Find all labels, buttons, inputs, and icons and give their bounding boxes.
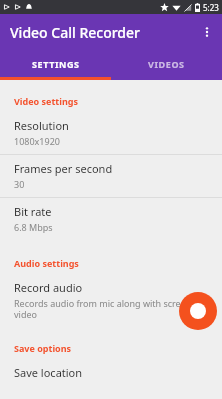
- staticText: Audio settings: [14, 257, 79, 269]
- button[interactable]: Start recording: [179, 292, 217, 330]
- staticText: Record audio: [14, 280, 83, 295]
- button[interactable]: SETTINGS: [0, 50, 111, 77]
- staticText: Resolution: [14, 118, 69, 133]
- button[interactable]: VIDEOS: [111, 50, 222, 77]
- staticText: 30: [14, 178, 25, 190]
- button[interactable]: Resolution: [0, 112, 222, 154]
- staticText: Save location: [14, 365, 83, 380]
- button[interactable]: Frames per second: [0, 155, 222, 197]
- staticText: 6.8 Mbps: [14, 221, 53, 233]
- staticText: Save options: [14, 342, 72, 354]
- staticText: 5:23: [203, 2, 219, 13]
- staticText: VIDEOS: [148, 58, 185, 70]
- staticText: SETTINGS: [32, 58, 80, 70]
- staticText: Bit rate: [14, 204, 52, 219]
- staticText: Records audio from mic along with screen…: [14, 297, 208, 320]
- staticText: Video settings: [14, 95, 79, 107]
- staticText: 1080x1920: [14, 135, 60, 147]
- staticText: Frames per second: [14, 161, 113, 176]
- button[interactable]: More options: [192, 17, 222, 47]
- button[interactable]: Record audio: [0, 274, 222, 327]
- staticText: Video Call Recorder: [10, 23, 140, 42]
- button[interactable]: Bit rate: [0, 198, 222, 240]
- button[interactable]: Save location: [0, 359, 222, 387]
